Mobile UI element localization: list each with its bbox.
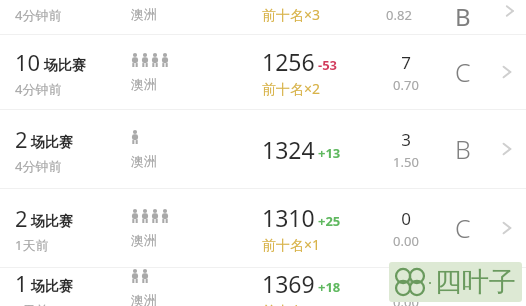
staticText: 场比赛 xyxy=(31,278,73,296)
staticText: 前十名×1 xyxy=(262,235,321,254)
button[interactable]: 2 xyxy=(0,189,526,267)
staticText: 0.70 xyxy=(393,76,419,94)
staticText: 4分钟前 xyxy=(15,6,62,24)
staticText: 4分钟前 xyxy=(15,80,62,98)
staticText: 0 xyxy=(401,207,411,230)
staticText: 2 xyxy=(15,124,28,154)
staticText: 四叶子 xyxy=(435,265,516,299)
staticText: C xyxy=(455,270,471,304)
staticText: 1310 xyxy=(262,202,315,233)
button[interactable]: View details xyxy=(494,275,518,299)
staticText: -53 xyxy=(318,56,338,74)
staticText: 3 xyxy=(401,128,411,151)
staticText: 场比赛 xyxy=(44,57,86,75)
staticText: 4分钟前 xyxy=(15,157,62,175)
staticText: 1天前 xyxy=(15,301,49,306)
staticText: C xyxy=(455,55,471,89)
staticText: 场比赛 xyxy=(31,134,73,152)
staticText: 1256 xyxy=(262,46,315,77)
staticText: B xyxy=(455,132,471,166)
staticText: 0 xyxy=(401,268,411,291)
staticText: 0.00 xyxy=(393,293,419,306)
button[interactable]: 1 xyxy=(0,268,526,306)
button[interactable]: 2 xyxy=(0,110,526,188)
staticText: 前十名×2 xyxy=(262,79,321,98)
staticText: 0.00 xyxy=(393,232,419,250)
staticText: 澳洲 xyxy=(131,292,157,306)
staticText: 澳洲 xyxy=(131,6,157,22)
staticText: 澳洲 xyxy=(131,76,157,92)
staticText: · xyxy=(428,272,433,292)
button[interactable]: 10 xyxy=(0,35,526,109)
staticText: 10 xyxy=(15,47,41,77)
staticText: 前十名×1 xyxy=(262,301,321,306)
staticText: 前十名×3 xyxy=(262,5,321,24)
staticText: 7 xyxy=(401,51,411,74)
staticText: 0.82 xyxy=(386,6,412,24)
staticText: 澳洲 xyxy=(131,232,157,248)
button[interactable]: View details xyxy=(494,60,518,84)
staticText: +25 xyxy=(318,212,341,230)
staticText: 1324 xyxy=(262,134,315,165)
staticText: 场比赛 xyxy=(31,213,73,231)
staticText: B xyxy=(455,0,471,33)
button[interactable]: View details xyxy=(494,137,518,161)
staticText: 1369 xyxy=(262,268,315,299)
staticText: +18 xyxy=(318,278,341,296)
staticText: +13 xyxy=(318,144,341,162)
staticText: C xyxy=(455,211,471,245)
staticText: 1 xyxy=(15,268,28,298)
button[interactable]: View details xyxy=(494,216,518,240)
staticText: 1天前 xyxy=(15,236,49,254)
staticText: 澳洲 xyxy=(131,153,157,169)
staticText: 1.50 xyxy=(393,153,419,171)
staticText: 2 xyxy=(15,203,28,233)
